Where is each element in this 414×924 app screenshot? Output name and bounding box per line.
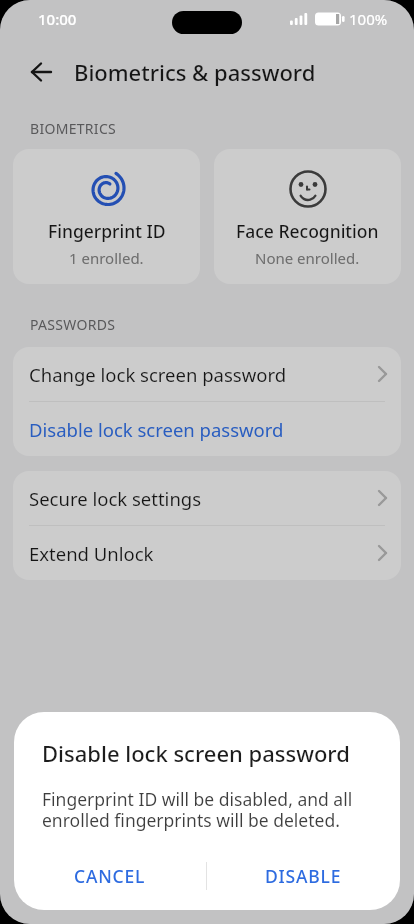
button[interactable]: Change lock screen password [13, 347, 401, 401]
staticText: Change lock screen password [29, 362, 377, 387]
button[interactable]: Fingerprint ID [13, 149, 200, 284]
button[interactable] [30, 61, 53, 83]
button[interactable]: Secure lock settings [13, 471, 401, 525]
staticText: Face Recognition [236, 219, 379, 243]
staticText: PASSWORDS [30, 315, 116, 334]
button[interactable]: Disable lock screen password [13, 402, 401, 456]
button[interactable]: Face Recognition [214, 149, 401, 284]
staticText: CANCEL [74, 864, 146, 888]
button[interactable]: Extend Unlock [13, 526, 401, 580]
staticText: Fingerprint ID will be disabled, and all… [42, 787, 353, 832]
staticText: Secure lock settings [29, 486, 377, 511]
staticText: Biometrics & password [74, 57, 316, 87]
button[interactable]: DISABLE [207, 855, 400, 897]
staticText: DISABLE [265, 864, 342, 888]
staticText: None enrolled. [255, 248, 360, 268]
staticText: 100% [349, 9, 388, 29]
staticText: Disable lock screen password [29, 417, 387, 442]
staticText: 10:00 [38, 9, 77, 29]
staticText: Disable lock screen password [42, 738, 350, 768]
staticText: Extend Unlock [29, 541, 377, 566]
staticText: Fingerprint ID [48, 219, 166, 243]
button[interactable]: CANCEL [14, 855, 206, 897]
staticText: BIOMETRICS [30, 119, 117, 138]
staticText: 1 enrolled. [69, 248, 144, 268]
